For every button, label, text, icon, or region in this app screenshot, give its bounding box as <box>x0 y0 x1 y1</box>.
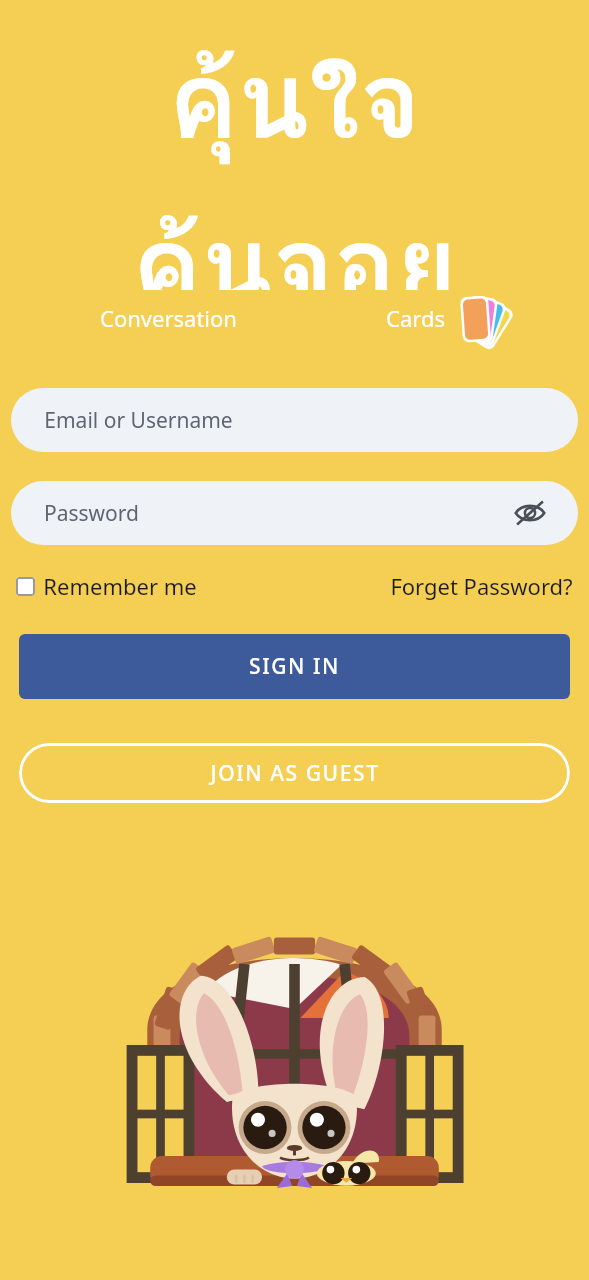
staticText: Email or Username <box>44 406 233 435</box>
button[interactable]: Forget Password? <box>390 571 573 601</box>
staticText: Remember me <box>43 571 197 601</box>
staticText: SIGN IN <box>249 652 340 681</box>
button[interactable]: Show password <box>510 493 550 533</box>
button[interactable]: Email or Username <box>11 388 578 452</box>
staticText: Cards <box>386 303 445 333</box>
staticText: Password <box>44 499 139 528</box>
button[interactable]: Password <box>11 481 578 545</box>
button[interactable]: SIGN IN <box>19 634 570 699</box>
staticText: Conversation <box>100 303 237 333</box>
staticText: คุ้นใจ <box>168 18 421 183</box>
staticText: Forget Password? <box>390 571 573 601</box>
staticText: JOIN AS GUEST <box>210 759 380 788</box>
staticText: คุ้นจอย <box>132 183 457 290</box>
button[interactable]: JOIN AS GUEST <box>19 743 570 803</box>
button[interactable]: Remember me <box>16 571 197 601</box>
